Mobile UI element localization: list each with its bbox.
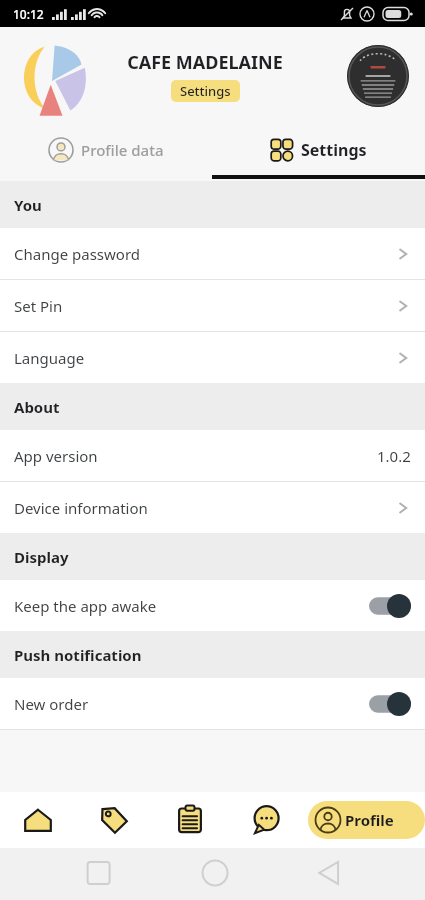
button[interactable]: Language (0, 332, 425, 383)
button[interactable]: Chat (228, 792, 304, 848)
staticText: 1.0.2 (377, 446, 411, 466)
staticText: Change password (14, 244, 141, 264)
button[interactable]: Set Pin (0, 280, 425, 331)
staticText: App version (14, 446, 98, 466)
button[interactable]: App version (0, 430, 425, 481)
button[interactable]: Device information (0, 482, 425, 533)
staticText: New order (14, 694, 89, 714)
button[interactable]: Profile data (0, 125, 212, 175)
staticText: Settings (180, 82, 231, 100)
button[interactable]: Settings (212, 125, 425, 175)
staticText: Display (14, 547, 69, 567)
staticText: 10:12 (13, 6, 44, 22)
staticText: Profile data (81, 140, 164, 160)
staticText: Set Pin (14, 296, 63, 316)
button[interactable]: Home (0, 792, 76, 848)
button[interactable]: Profile picture (347, 45, 409, 107)
staticText: Keep the app awake (14, 596, 157, 616)
button[interactable]: Change password (0, 228, 425, 279)
button[interactable]: Orders (152, 792, 228, 848)
staticText: About (14, 397, 60, 417)
staticText: You (14, 195, 42, 215)
staticText: CAFE MADELAINE (127, 50, 283, 75)
staticText: Push notification (14, 645, 142, 665)
button[interactable]: Offers (76, 792, 152, 848)
staticText: Settings (301, 139, 367, 161)
button[interactable]: Settings (171, 80, 240, 102)
button[interactable]: New order (0, 678, 425, 729)
staticText: Language (14, 348, 85, 368)
button[interactable]: Keep the app awake (0, 580, 425, 631)
button[interactable]: Profile (308, 801, 425, 839)
staticText: Profile (345, 810, 394, 830)
staticText: Device information (14, 498, 148, 518)
